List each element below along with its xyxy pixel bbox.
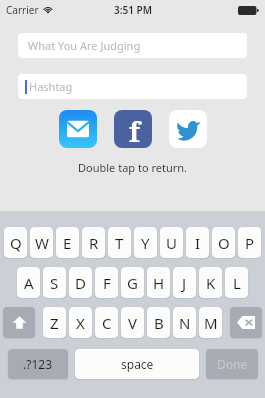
button[interactable]: Share on Twitter [169, 110, 207, 148]
staticText: I [195, 233, 201, 253]
button[interactable]: Backspace [230, 307, 262, 338]
button[interactable]: S [43, 267, 66, 298]
button[interactable]: Shift [3, 307, 35, 338]
button[interactable]: N [173, 307, 196, 338]
button[interactable]: Hashtag [18, 74, 247, 99]
staticText: V [128, 313, 138, 333]
staticText: G [127, 273, 138, 293]
button[interactable]: K [199, 267, 222, 298]
staticText: Q [10, 233, 22, 253]
staticText: N [179, 313, 191, 333]
staticText: T [115, 233, 124, 253]
staticText: X [76, 313, 85, 333]
button[interactable]: A [17, 267, 40, 298]
staticText: K [206, 273, 216, 293]
staticText: Y [141, 233, 150, 253]
button[interactable]: Z [43, 307, 66, 338]
button[interactable]: R [82, 227, 105, 258]
button[interactable]: J [173, 267, 196, 298]
staticText: J [182, 273, 187, 293]
button[interactable]: I [186, 227, 209, 258]
staticText: .?123 [23, 356, 53, 372]
button[interactable]: Q [4, 227, 27, 258]
staticText: Hashtag [29, 79, 73, 94]
staticText: Double tap to return. [0, 160, 265, 175]
button[interactable]: Done [206, 349, 258, 379]
staticText: P [245, 233, 255, 253]
button[interactable]: U [160, 227, 183, 258]
staticText: U [166, 233, 177, 253]
button[interactable]: C [95, 307, 118, 338]
button[interactable]: V [121, 307, 144, 338]
button[interactable]: Share by Mail [59, 110, 97, 148]
button[interactable]: O [212, 227, 235, 258]
staticText: H [153, 273, 165, 293]
staticText: S [50, 273, 59, 293]
button[interactable]: Share on Facebook [114, 110, 152, 148]
staticText: space [121, 356, 154, 372]
button[interactable]: G [121, 267, 144, 298]
staticText: F [103, 273, 111, 293]
staticText: 3:51 PM [114, 3, 152, 17]
staticText: A [24, 273, 34, 293]
button[interactable]: E [56, 227, 79, 258]
button[interactable]: What You Are Judging [18, 33, 247, 58]
staticText: R [89, 233, 99, 253]
button[interactable]: D [69, 267, 92, 298]
button[interactable]: W [30, 227, 53, 258]
staticText: L [233, 273, 241, 293]
button[interactable]: B [147, 307, 170, 338]
staticText: M [204, 313, 218, 333]
button[interactable]: M [199, 307, 222, 338]
button[interactable]: F [95, 267, 118, 298]
staticText: Done [217, 356, 248, 372]
staticText: O [218, 233, 230, 253]
button[interactable]: Y [134, 227, 157, 258]
button[interactable]: space [75, 349, 199, 379]
button[interactable]: H [147, 267, 170, 298]
button[interactable]: .?123 [8, 349, 68, 379]
staticText: Z [50, 313, 59, 333]
staticText: W [35, 233, 49, 253]
staticText: B [154, 313, 164, 333]
staticText: What You Are Judging [28, 38, 141, 53]
button[interactable]: P [238, 227, 261, 258]
staticText: E [63, 233, 72, 253]
staticText: C [102, 313, 112, 333]
staticText: f [129, 113, 140, 148]
staticText: Carrier [6, 3, 39, 17]
button[interactable]: L [225, 267, 248, 298]
button[interactable]: T [108, 227, 131, 258]
button[interactable]: X [69, 307, 92, 338]
staticText: D [75, 273, 86, 293]
